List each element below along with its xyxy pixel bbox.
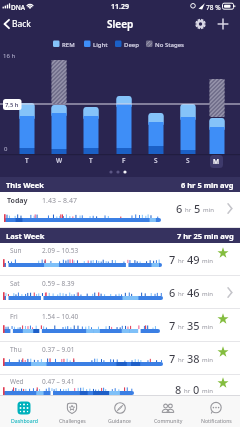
staticText: min [202,257,213,265]
staticText: hr [178,290,185,298]
staticText: hr [178,257,185,265]
staticText: 7 [169,252,176,267]
staticText: DNA [11,3,26,12]
staticText: Sun [10,246,22,255]
staticText: Sleep [107,17,134,31]
staticText: hr [185,206,192,214]
button[interactable]: Notifications [192,396,240,427]
staticText: 7 [169,351,176,366]
staticText: 1.54 – 10.40 [42,312,79,321]
staticText: min [202,323,213,331]
staticText: S [154,156,158,165]
staticText: 0.59 – 8.39 [42,279,75,288]
staticText: 6 [169,285,176,300]
staticText: 7 [169,318,176,333]
staticText: 0.37 – 9.01 [42,345,75,354]
button[interactable]: Challenges [48,396,96,427]
staticText: hr [178,356,185,364]
staticText: REM [62,41,75,49]
button[interactable]: Wed [0,375,240,408]
staticText: 1.43 – 8.47 [42,196,77,206]
staticText: Deep [124,41,139,49]
button[interactable] [214,14,236,34]
staticText: Wed [10,377,24,386]
staticText: 16 h [3,52,16,60]
staticText: min [202,290,213,298]
staticText: Thu [10,345,22,354]
staticText: Light [93,41,108,49]
button[interactable] [206,152,226,171]
staticText: T [89,156,93,165]
staticText: Community [154,417,183,424]
staticText: 0 [4,145,8,153]
staticText: T [25,156,29,165]
staticText: Sat [10,279,20,288]
staticText: Challenges [59,417,86,424]
staticText: 0.47 – 9.41 [42,377,75,386]
staticText: 7 hr 25 min avg [177,231,234,241]
staticText: Guidance [108,417,132,424]
staticText: 2.09 – 10.53 [42,246,79,255]
staticText: This Week [6,180,44,190]
staticText: Dashboard [11,417,38,424]
staticText: 49 [187,252,200,267]
staticText: 35 [187,318,200,333]
button[interactable]: Today [0,192,240,228]
staticText: 78 % [206,3,221,12]
staticText: 8 [175,382,182,397]
staticText: Today [7,196,28,206]
staticText: hr [184,387,191,395]
button[interactable] [190,14,212,34]
staticText: hr [178,323,185,331]
button[interactable]: Sun [0,243,240,276]
staticText: 11.29 [111,2,129,12]
staticText: F [122,156,126,165]
staticText: min [202,387,213,395]
button[interactable]: Sat [0,276,240,309]
button[interactable]: Thu [0,342,240,375]
staticText: 0 [193,382,200,397]
staticText: 5 [194,201,201,216]
staticText: W [56,156,63,165]
staticText: 46 [187,285,200,300]
staticText: 7,5 h [5,101,19,109]
staticText: No Stages [155,41,184,49]
staticText: min [203,206,214,214]
button[interactable]: Dashboard [0,396,48,427]
button[interactable] [2,14,32,34]
staticText: 6 hr 5 min avg [181,180,234,190]
staticText: 38 [187,351,200,366]
button[interactable]: Fri [0,309,240,342]
staticText: Notifications [201,417,232,424]
staticText: S [186,156,190,165]
button[interactable]: Guidance [96,396,144,427]
staticText: min [202,356,213,364]
staticText: Back [12,18,31,30]
staticText: 6 [176,201,183,216]
staticText: Fri [10,312,18,321]
staticText: Last Week [6,231,45,241]
button[interactable]: Community [144,396,192,427]
staticText: M [213,157,220,166]
